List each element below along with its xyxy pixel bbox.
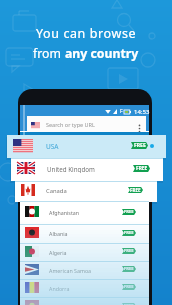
button[interactable]: Afghanistan xyxy=(20,201,149,224)
button[interactable]: Free server xyxy=(122,248,136,254)
button[interactable]: Free server xyxy=(122,230,136,236)
button[interactable]: More options xyxy=(137,124,142,133)
button[interactable]: United Kingdom xyxy=(11,158,163,181)
button[interactable]: Angola xyxy=(20,297,149,305)
button[interactable]: Canada xyxy=(15,181,157,202)
staticText: FREE xyxy=(124,209,134,215)
staticText: Algeria xyxy=(49,249,67,256)
button[interactable]: Free server xyxy=(128,187,143,193)
staticText: FREE xyxy=(124,284,134,290)
button[interactable]: Free server xyxy=(122,266,136,272)
button[interactable]: Albania xyxy=(20,224,149,243)
staticText: F xyxy=(120,108,123,115)
button[interactable]: Free server xyxy=(133,165,150,172)
staticText: 14:53 xyxy=(134,108,150,116)
staticText: FREE xyxy=(124,248,134,254)
button[interactable]: Search or type URL xyxy=(27,116,146,132)
staticText: Afghanistan xyxy=(49,209,80,216)
staticText: FREE xyxy=(134,142,146,149)
staticText: Albania xyxy=(49,230,68,237)
staticText: FREE xyxy=(124,303,134,305)
staticText: Andorra xyxy=(49,285,70,292)
staticText: USA xyxy=(46,142,59,150)
button[interactable]: Free server xyxy=(122,303,136,305)
button[interactable]: Free server xyxy=(122,209,136,215)
staticText: FREE xyxy=(130,187,141,193)
button[interactable]: American Samoa xyxy=(20,261,149,279)
staticText: United Kingdom xyxy=(47,165,95,173)
button[interactable]: USA xyxy=(7,135,166,158)
button[interactable]: Free server xyxy=(122,284,136,290)
staticText: any country xyxy=(65,45,139,62)
staticText: Search or type URL xyxy=(46,121,95,128)
staticText: You can browse xyxy=(36,25,137,42)
staticText: Canada xyxy=(46,187,67,195)
button[interactable]: Free server xyxy=(131,142,148,149)
staticText: from xyxy=(33,45,65,62)
button[interactable]: Andorra xyxy=(20,279,149,297)
staticText: FREE xyxy=(124,230,134,236)
staticText: FREE xyxy=(136,165,148,172)
staticText: American Samoa xyxy=(49,267,92,274)
button[interactable]: Algeria xyxy=(20,243,149,261)
staticText: FREE xyxy=(124,266,134,272)
